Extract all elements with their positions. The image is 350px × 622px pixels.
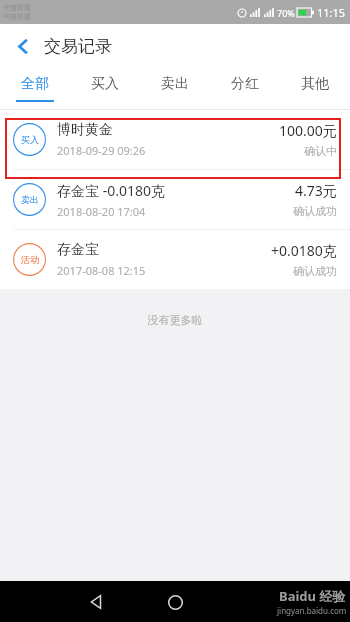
staticText: 买入 [91, 75, 119, 93]
button[interactable]: 买入 [0, 110, 350, 169]
staticText: Baidu 经验 [279, 587, 346, 605]
button[interactable]: 卖出 [0, 170, 350, 229]
staticText: 确认中 [304, 144, 337, 158]
staticText: 中国联通 [3, 12, 31, 21]
button[interactable]: 活动 [0, 230, 350, 289]
staticText: 存金宝 -0.0180克 [57, 181, 165, 200]
staticText: 买入 [21, 134, 39, 145]
staticText: 2018-09-29 09:26 [57, 143, 146, 158]
button[interactable]: Back [82, 587, 112, 617]
button[interactable]: 分红 [210, 68, 280, 109]
staticText: 分红 [231, 75, 259, 93]
staticText: 交易记录 [44, 36, 112, 57]
staticText: 全部 [21, 75, 49, 93]
staticText: 2018-08-20 17:04 [57, 204, 146, 219]
staticText: 存金宝 [57, 241, 99, 259]
staticText: 活动 [21, 254, 39, 265]
staticText: 其他 [301, 75, 329, 93]
staticText: jingyan.baidu.com [277, 605, 347, 616]
staticText: 确认成功 [293, 264, 337, 278]
button[interactable]: 全部 [0, 68, 70, 109]
staticText: 卖出 [161, 75, 189, 93]
staticText: +0.0180克 [271, 241, 337, 260]
staticText: 11:15 [317, 5, 346, 20]
staticText: 2017-08-08 12:15 [57, 263, 146, 278]
staticText: 卖出 [21, 194, 39, 205]
staticText: 100.00元 [279, 121, 337, 140]
staticText: 中国联通 [3, 3, 31, 12]
staticText: 4.73元 [295, 181, 337, 200]
staticText: 没有更多啦 [0, 313, 350, 327]
button[interactable]: 卖出 [140, 68, 210, 109]
staticText: 博时黄金 [57, 121, 113, 139]
staticText: 70% [277, 7, 295, 19]
button[interactable]: 买入 [70, 68, 140, 109]
button[interactable]: Home [160, 587, 190, 617]
button[interactable]: Back [6, 29, 40, 63]
button[interactable]: 其他 [280, 68, 350, 109]
staticText: 确认成功 [293, 204, 337, 218]
